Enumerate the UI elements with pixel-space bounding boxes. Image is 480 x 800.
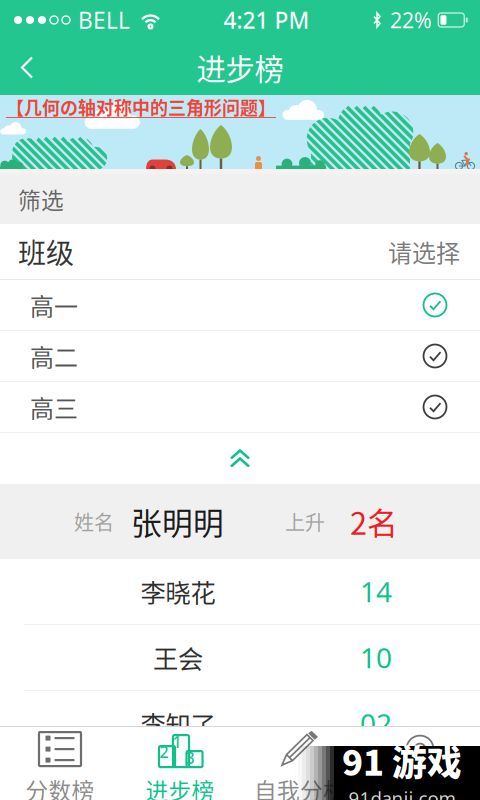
staticText: 进步榜 bbox=[196, 46, 283, 89]
button[interactable]: 高三 bbox=[0, 382, 480, 432]
staticText: 请选择 bbox=[388, 234, 460, 269]
staticText: 22% bbox=[390, 6, 432, 34]
button[interactable]: 班级 bbox=[0, 224, 480, 279]
staticText: 2 bbox=[159, 741, 168, 762]
staticText: 1 bbox=[172, 731, 181, 752]
staticText: 91 游戏 bbox=[342, 735, 462, 786]
staticText: 筛选 bbox=[18, 183, 64, 215]
staticText: 王会 bbox=[153, 639, 203, 676]
button[interactable]: 李晓花 bbox=[0, 559, 480, 624]
staticText: 李晓花 bbox=[140, 573, 215, 610]
staticText: 10 bbox=[360, 639, 392, 676]
staticText: 张明明 bbox=[131, 499, 224, 544]
button[interactable]: 李知了 bbox=[0, 691, 480, 756]
button[interactable]: 2 bbox=[120, 727, 240, 800]
staticText: 高二 bbox=[30, 339, 78, 373]
staticText: 姓名 bbox=[74, 507, 114, 536]
staticText: 赵小明 bbox=[140, 771, 215, 800]
staticText: BELL bbox=[78, 5, 130, 35]
staticText: 2名 bbox=[350, 499, 398, 544]
staticText: 4:21 PM bbox=[223, 5, 309, 35]
staticText: 02 bbox=[360, 705, 392, 742]
staticText: 3 bbox=[185, 747, 194, 768]
button[interactable]: 高一 bbox=[0, 280, 480, 330]
button[interactable]: Back bbox=[0, 40, 58, 94]
staticText: 自我分析 bbox=[254, 773, 346, 800]
staticText: 高三 bbox=[30, 390, 78, 424]
staticText: 上升 bbox=[285, 507, 325, 536]
button[interactable]: 我 bbox=[360, 727, 480, 800]
button[interactable]: 王会 bbox=[0, 625, 480, 690]
button[interactable]: Collapse bbox=[0, 433, 480, 484]
button[interactable]: 分数榜 bbox=[0, 727, 120, 800]
staticText: 91danji.com bbox=[348, 786, 455, 800]
staticText: 05 bbox=[360, 771, 392, 800]
staticText: 班级 bbox=[18, 231, 74, 272]
staticText: 14 bbox=[360, 573, 392, 610]
staticText: 【几何の轴对称中的三角形问题】 bbox=[6, 94, 276, 120]
button[interactable]: 自我分析 bbox=[240, 727, 360, 800]
staticText: 我 bbox=[408, 773, 431, 800]
button[interactable]: 高二 bbox=[0, 331, 480, 381]
staticText: 高一 bbox=[30, 288, 78, 322]
staticText: 李知了 bbox=[140, 705, 215, 742]
staticText: 分数榜 bbox=[25, 773, 94, 800]
staticText: 进步榜 bbox=[145, 773, 214, 800]
button[interactable]: 赵小明 bbox=[0, 757, 480, 800]
